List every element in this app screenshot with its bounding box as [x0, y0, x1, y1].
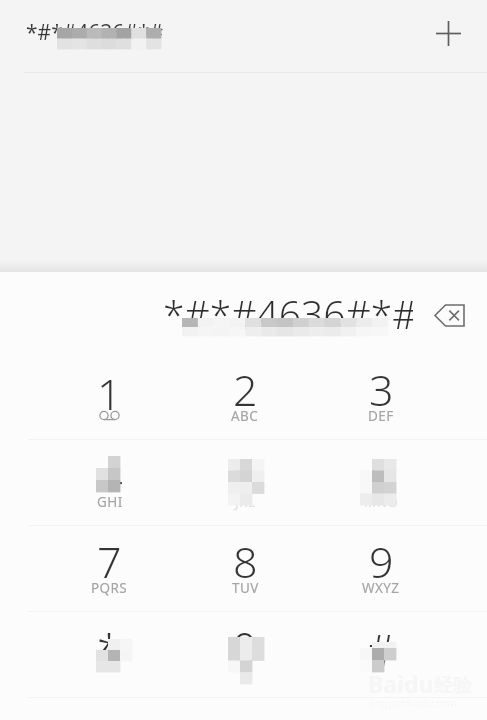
- staticText: #: [367, 620, 396, 680]
- staticText: MNO: [364, 493, 399, 511]
- button[interactable]: 1: [42, 354, 177, 440]
- staticText: 9: [369, 532, 394, 591]
- button[interactable]: 7: [42, 526, 177, 612]
- button[interactable]: *: [42, 612, 177, 698]
- staticText: DEF: [368, 407, 394, 425]
- staticText: 6: [369, 446, 394, 505]
- button[interactable]: 4: [42, 440, 177, 526]
- staticText: 1: [97, 364, 122, 423]
- staticText: 5: [233, 446, 258, 505]
- staticText: 0: [232, 618, 258, 678]
- button[interactable]: 5: [177, 440, 313, 526]
- staticText: +: [242, 666, 249, 682]
- button[interactable]: 3: [313, 354, 449, 440]
- staticText: 7: [97, 532, 122, 591]
- button[interactable]: #: [313, 612, 449, 698]
- button[interactable]: 2: [177, 354, 313, 440]
- staticText: 2: [233, 360, 258, 419]
- staticText: 8: [233, 532, 258, 591]
- button[interactable]: Backspace: [413, 272, 487, 354]
- button[interactable]: 0: [177, 612, 313, 698]
- staticText: Baidu: [368, 668, 434, 699]
- button[interactable]: 6: [313, 440, 449, 526]
- button[interactable]: 9: [313, 526, 449, 612]
- staticText: *#*#4636#*#: [163, 287, 413, 340]
- staticText: *: [97, 620, 122, 680]
- staticText: 3: [369, 360, 394, 419]
- staticText: WXYZ: [362, 579, 400, 597]
- staticText: TUV: [232, 579, 259, 597]
- staticText: PQRS: [91, 579, 128, 597]
- staticText: *#*#4636#*#: [26, 18, 164, 47]
- staticText: ABC: [231, 407, 259, 425]
- staticText: JKL: [235, 493, 256, 511]
- staticText: GHI: [97, 493, 123, 511]
- staticText: 4: [98, 446, 123, 505]
- button[interactable]: Add contact: [424, 9, 472, 57]
- button[interactable]: 8: [177, 526, 313, 612]
